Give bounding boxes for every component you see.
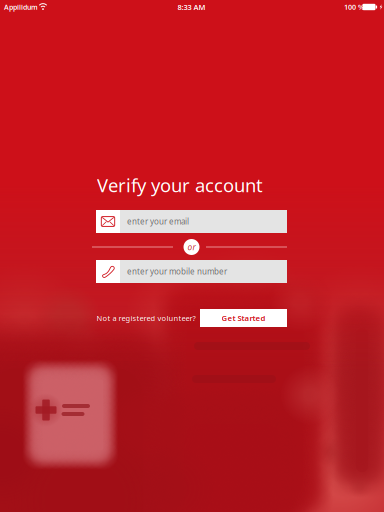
- staticText: Appilidum: [4, 2, 38, 12]
- staticText: or: [187, 241, 195, 253]
- staticText: 100 %: [344, 2, 364, 12]
- staticText: Get Started: [221, 313, 265, 323]
- button[interactable]: Get Started: [200, 309, 287, 327]
- staticText: enter your mobile number: [127, 266, 227, 277]
- button[interactable]: enter your email: [96, 210, 287, 233]
- staticText: enter your email: [127, 216, 189, 227]
- staticText: Not a registered volunteer?: [96, 313, 195, 323]
- staticText: Verify your account: [97, 172, 263, 198]
- staticText: 8:33 AM: [177, 2, 205, 12]
- button[interactable]: enter your mobile number: [96, 260, 287, 283]
